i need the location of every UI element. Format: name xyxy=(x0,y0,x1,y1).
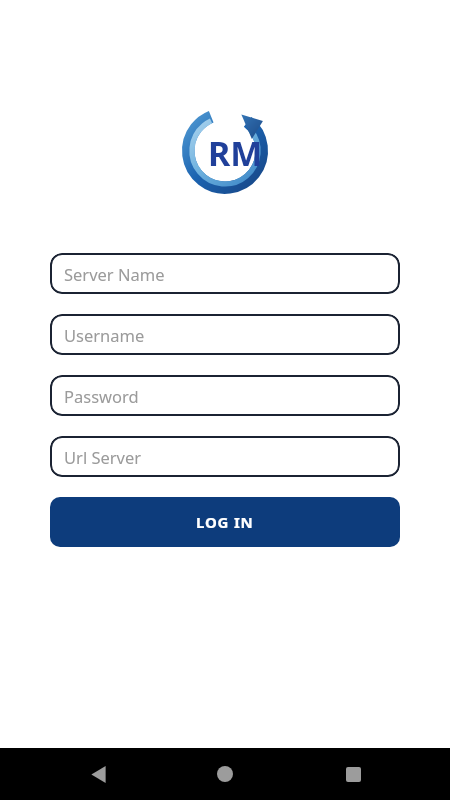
staticText: Password xyxy=(64,385,139,407)
staticText: Username xyxy=(64,324,145,346)
button[interactable]: Server Name xyxy=(50,253,400,294)
staticText: RM xyxy=(208,130,263,176)
button[interactable]: Username xyxy=(50,314,400,355)
button[interactable]: Url Server xyxy=(50,436,400,477)
button[interactable]: Back xyxy=(68,748,128,800)
button[interactable]: LOG IN xyxy=(50,497,400,547)
staticText: Server Name xyxy=(64,263,165,285)
staticText: LOG IN xyxy=(196,512,254,532)
button[interactable]: Home xyxy=(195,748,255,800)
button[interactable]: Recent apps xyxy=(323,748,383,800)
button[interactable]: Password xyxy=(50,375,400,416)
staticText: Url Server xyxy=(64,446,142,468)
